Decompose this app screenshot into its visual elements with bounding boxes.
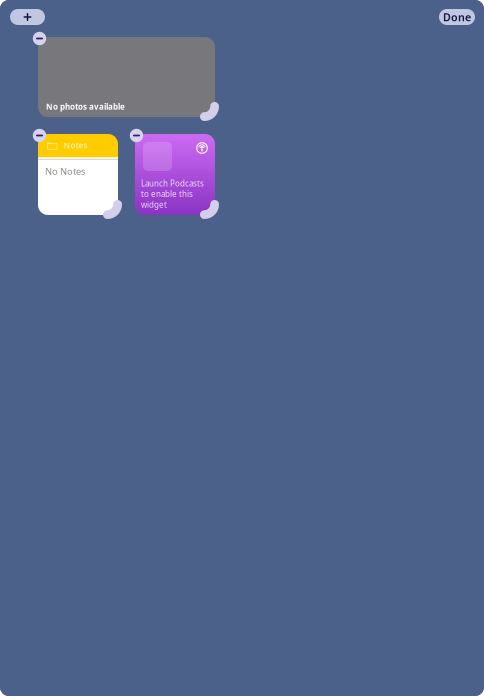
staticText: Launch Podcasts to enable this widget — [141, 178, 204, 210]
button[interactable]: Remove widget — [128, 127, 144, 143]
staticText: Done — [443, 10, 471, 24]
staticText: Notes — [63, 140, 87, 151]
button[interactable]: Launch Podcasts to enable this widget — [123, 122, 227, 227]
button[interactable]: Notes — [26, 122, 130, 227]
button[interactable]: No photos available — [26, 25, 227, 129]
staticText: No photos available — [46, 101, 125, 112]
button[interactable]: Remove widget — [31, 30, 47, 46]
button[interactable]: Add widget — [10, 9, 45, 25]
button[interactable]: Done — [439, 9, 475, 25]
staticText: No Notes — [45, 165, 85, 177]
button[interactable]: Remove widget — [31, 127, 47, 143]
